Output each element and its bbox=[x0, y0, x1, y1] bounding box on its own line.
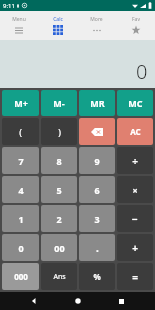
staticText: 00 bbox=[54, 242, 65, 254]
button[interactable]: × bbox=[117, 176, 153, 203]
button[interactable]: AC bbox=[117, 118, 153, 145]
staticText: Menu bbox=[12, 16, 26, 23]
staticText: + bbox=[132, 241, 138, 255]
button[interactable]: + bbox=[117, 234, 153, 261]
staticText: 6 bbox=[94, 184, 100, 196]
button[interactable]: 2 bbox=[41, 205, 77, 232]
staticText: 8 bbox=[56, 155, 62, 167]
staticText: . bbox=[96, 241, 99, 255]
button[interactable]: . bbox=[79, 234, 115, 261]
button[interactable]: ) bbox=[41, 118, 77, 145]
staticText: 000 bbox=[14, 271, 28, 282]
button[interactable]: More bbox=[77, 11, 116, 40]
button[interactable]: 000 bbox=[2, 263, 39, 290]
staticText: More bbox=[90, 16, 103, 23]
staticText: Ans bbox=[53, 272, 66, 282]
button[interactable]: Calc bbox=[38, 11, 77, 40]
button[interactable]: MC bbox=[117, 90, 153, 116]
staticText: 0 bbox=[18, 242, 24, 254]
staticText: 0 bbox=[136, 58, 148, 85]
button[interactable]: Ans bbox=[41, 263, 77, 290]
staticText: − bbox=[132, 212, 138, 226]
button[interactable]: Recent apps bbox=[112, 292, 130, 310]
button[interactable]: % bbox=[79, 263, 115, 290]
staticText: ÷ bbox=[132, 154, 138, 168]
staticText: 7 bbox=[18, 155, 24, 167]
button[interactable]: − bbox=[117, 205, 153, 232]
staticText: M- bbox=[53, 97, 65, 109]
staticText: × bbox=[132, 184, 138, 196]
button[interactable]: = bbox=[117, 263, 153, 290]
staticText: 9:11 bbox=[3, 2, 15, 10]
staticText: ( bbox=[19, 126, 22, 138]
staticText: = bbox=[132, 270, 138, 284]
button[interactable]: Back bbox=[25, 292, 43, 310]
staticText: 3 bbox=[94, 213, 100, 225]
staticText: M+ bbox=[14, 97, 28, 109]
button[interactable]: 6 bbox=[79, 176, 115, 203]
button[interactable]: 4 bbox=[2, 176, 39, 203]
staticText: ) bbox=[58, 126, 61, 138]
staticText: % bbox=[93, 271, 101, 282]
staticText: Fav bbox=[132, 16, 140, 23]
button[interactable]: 00 bbox=[41, 234, 77, 261]
button[interactable]: ( bbox=[2, 118, 39, 145]
staticText: Calc bbox=[53, 16, 63, 23]
button[interactable]: 1 bbox=[2, 205, 39, 232]
button[interactable]: 9 bbox=[79, 147, 115, 174]
button[interactable]: 0 bbox=[2, 234, 39, 261]
staticText: MR bbox=[90, 97, 105, 109]
staticText: 5 bbox=[56, 184, 62, 196]
staticText: 4 bbox=[18, 184, 24, 196]
staticText: AC bbox=[130, 126, 141, 137]
button[interactable]: Menu bbox=[0, 11, 38, 40]
button[interactable]: M+ bbox=[2, 90, 39, 116]
button[interactable]: MR bbox=[79, 90, 115, 116]
button[interactable]: 7 bbox=[2, 147, 39, 174]
staticText: 2 bbox=[56, 213, 62, 225]
button[interactable]: Fav bbox=[116, 11, 155, 40]
button[interactable]: ÷ bbox=[117, 147, 153, 174]
staticText: 9 bbox=[94, 155, 100, 167]
button[interactable]: 3 bbox=[79, 205, 115, 232]
button[interactable]: 8 bbox=[41, 147, 77, 174]
button[interactable]: Backspace bbox=[79, 118, 115, 145]
button[interactable]: Home bbox=[69, 292, 87, 310]
button[interactable]: M- bbox=[41, 90, 77, 116]
staticText: 1 bbox=[18, 213, 24, 225]
staticText: MC bbox=[128, 97, 143, 109]
button[interactable]: 5 bbox=[41, 176, 77, 203]
